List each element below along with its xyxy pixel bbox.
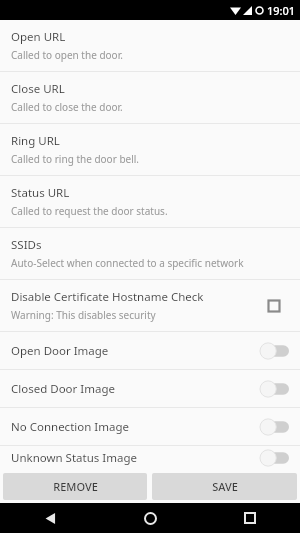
staticText: Called to open the door.: [11, 48, 123, 62]
staticText: Called to ring the door bell.: [11, 152, 140, 166]
button[interactable]: REMOVE: [3, 473, 147, 500]
button[interactable]: No Connection Image toggle: [259, 416, 289, 438]
button[interactable]: Open Door Image toggle: [259, 340, 289, 362]
staticText: SAVE: [212, 479, 238, 494]
button[interactable]: Back: [0, 503, 100, 533]
button[interactable]: SSIDs: [0, 228, 300, 279]
button[interactable]: Closed Door Image: [0, 370, 300, 407]
staticText: SSIDs: [11, 237, 42, 253]
button[interactable]: No Connection Image: [0, 408, 300, 445]
staticText: No Connection Image: [11, 419, 259, 435]
button[interactable]: Disable certificate hostname check check…: [261, 293, 287, 319]
button[interactable]: Open URL: [0, 20, 300, 71]
button[interactable]: Open Door Image: [0, 332, 300, 369]
button[interactable]: Close URL: [0, 72, 300, 123]
button[interactable]: Recent apps: [200, 503, 300, 533]
button[interactable]: Disable Certificate Hostname Check: [0, 280, 300, 331]
staticText: Close URL: [11, 81, 65, 97]
button[interactable]: Unknown Status Image: [0, 446, 300, 470]
staticText: REMOVE: [53, 479, 98, 494]
button[interactable]: Home: [100, 503, 200, 533]
staticText: Disable Certificate Hostname Check: [11, 289, 204, 305]
button[interactable]: SAVE: [152, 473, 297, 500]
staticText: Unknown Status Image: [11, 450, 259, 466]
staticText: Called to request the door status.: [11, 204, 168, 218]
staticText: Called to close the door.: [11, 100, 123, 114]
button[interactable]: Unknown Status Image toggle: [259, 447, 289, 469]
staticText: Open URL: [11, 29, 66, 45]
staticText: Warning: This disables security: [11, 308, 156, 322]
button[interactable]: Ring URL: [0, 124, 300, 175]
staticText: Closed Door Image: [11, 381, 259, 397]
button[interactable]: Status URL: [0, 176, 300, 227]
staticText: Status URL: [11, 185, 70, 201]
staticText: 19:01: [267, 3, 296, 18]
staticText: Auto-Select when connected to a specific…: [11, 256, 244, 270]
button[interactable]: Closed Door Image toggle: [259, 378, 289, 400]
staticText: Ring URL: [11, 133, 60, 149]
staticText: Open Door Image: [11, 343, 259, 359]
